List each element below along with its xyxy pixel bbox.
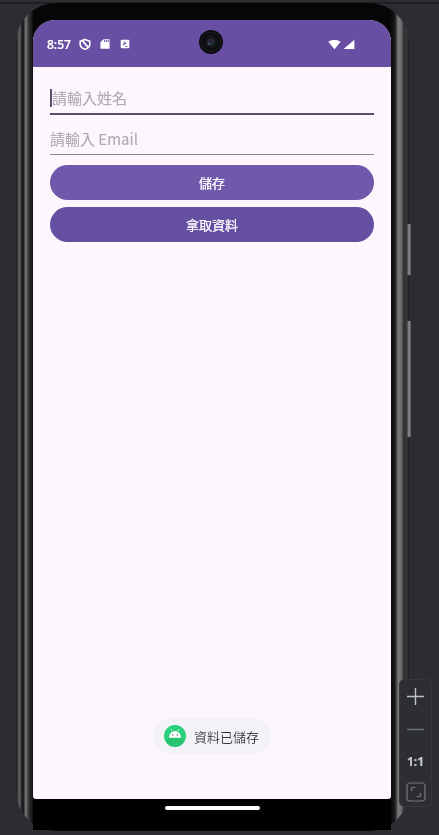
staticText: 資料已儲存 — [194, 727, 260, 746]
button[interactable]: 儲存 — [50, 165, 374, 200]
button[interactable]: Zoom in — [399, 679, 432, 713]
staticText: 請輸入姓名 — [52, 87, 128, 108]
button[interactable]: 請輸入 Email — [50, 128, 374, 155]
staticText: 拿取資料 — [186, 215, 239, 234]
button[interactable]: 拿取資料 — [50, 207, 374, 242]
staticText: 請輸入 Email — [50, 128, 138, 149]
button[interactable]: 1:1 — [399, 745, 432, 776]
button[interactable]: Zoom out — [399, 713, 432, 745]
staticText: 8:57 — [47, 36, 71, 52]
staticText: 1:1 — [407, 753, 425, 769]
button[interactable]: 資料已儲存 — [153, 718, 271, 754]
staticText: 儲存 — [199, 173, 226, 192]
button[interactable]: Fit to screen — [399, 776, 432, 807]
button[interactable]: 請輸入姓名 — [50, 87, 374, 115]
